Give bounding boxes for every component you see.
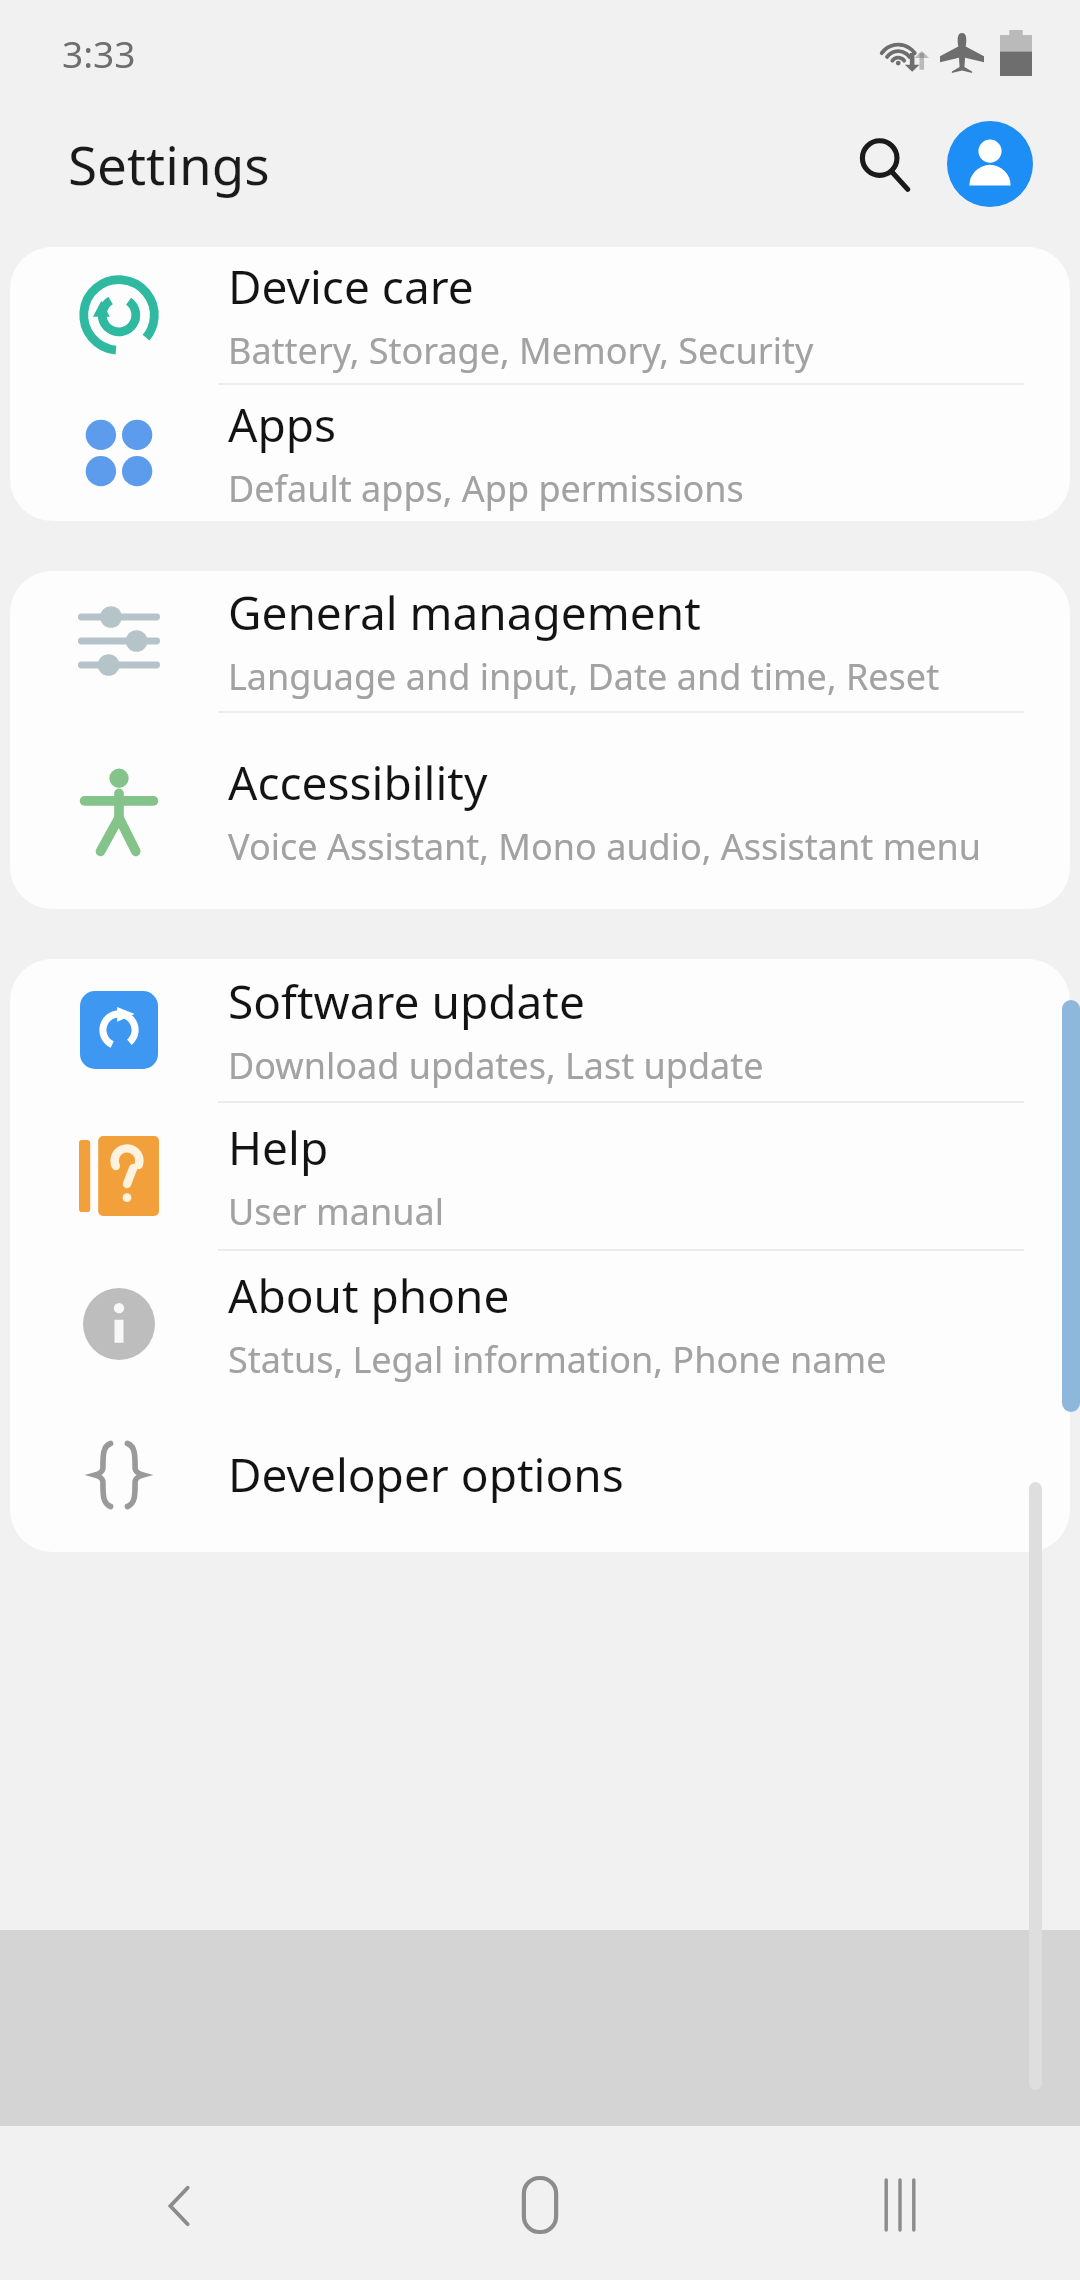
button[interactable]: Home	[360, 2130, 720, 2280]
button[interactable]: Software update	[10, 959, 1070, 1101]
staticText: Device care	[228, 255, 474, 318]
staticText: Help	[228, 1116, 329, 1179]
button[interactable]: Recents	[720, 2130, 1080, 2280]
staticText: Battery, Storage, Memory, Security	[228, 326, 814, 375]
staticText: Default apps, App permissions	[228, 464, 744, 513]
staticText: Software update	[228, 970, 585, 1033]
staticText: User manual	[228, 1187, 444, 1236]
button[interactable]: Device care	[10, 247, 1070, 383]
staticText: Developer options	[228, 1443, 624, 1506]
button[interactable]: Accessibility	[10, 713, 1070, 909]
staticText: About phone	[228, 1264, 510, 1327]
staticText: Settings	[68, 128, 270, 200]
staticText: Apps	[228, 393, 337, 456]
button[interactable]: Search	[834, 114, 934, 214]
staticText: General management	[228, 581, 701, 644]
staticText: Language and input, Date and time, Reset	[228, 652, 940, 701]
button[interactable]: Back	[0, 2130, 360, 2280]
button[interactable]: Apps	[10, 385, 1070, 521]
button[interactable]: Help	[10, 1103, 1070, 1249]
button[interactable]: General management	[10, 571, 1070, 711]
staticText: Status, Legal information, Phone name	[228, 1335, 887, 1384]
button[interactable]: About phone	[10, 1251, 1070, 1397]
button[interactable]: Account	[940, 114, 1040, 214]
staticText: 3:33	[62, 28, 136, 78]
staticText: Voice Assistant, Mono audio, Assistant m…	[228, 822, 982, 871]
button[interactable]: Developer options	[10, 1397, 1070, 1552]
staticText: Download updates, Last update	[228, 1041, 764, 1090]
staticText: Accessibility	[228, 751, 488, 814]
